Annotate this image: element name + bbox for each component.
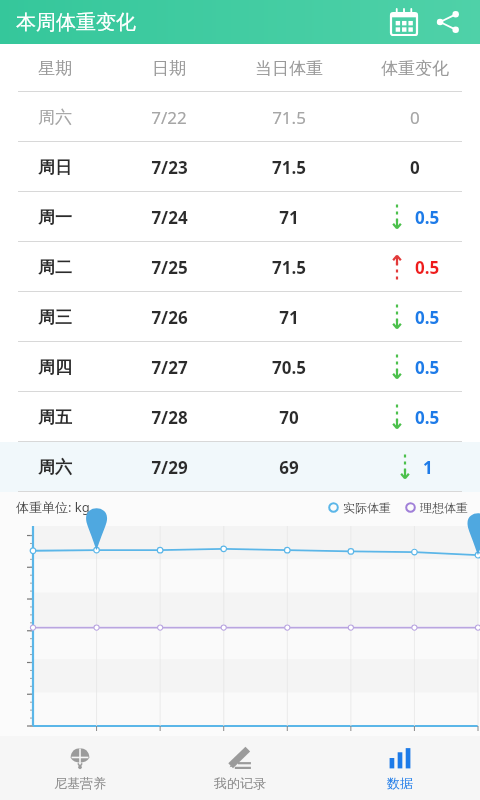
staticText: 7/26	[151, 306, 188, 329]
button[interactable]: 尼基营养	[0, 736, 160, 800]
staticText: 0.5	[415, 406, 440, 429]
staticText: 7/29	[151, 456, 188, 479]
button[interactable]: 周二	[0, 242, 480, 292]
staticText: 我的记录	[214, 775, 266, 791]
button[interactable]: 数据	[320, 736, 480, 800]
staticText: 实际体重	[343, 500, 391, 515]
staticText: 71.5	[272, 156, 306, 179]
staticText: 周日	[38, 157, 72, 178]
staticText: 7/24	[151, 206, 188, 229]
staticText: 69	[279, 456, 299, 479]
staticText: 71.5	[272, 106, 306, 129]
staticText: 本周体重变化	[16, 10, 136, 35]
staticText: 0.5	[415, 206, 440, 229]
staticText: 7/22	[151, 106, 187, 129]
button[interactable]: 我的记录	[160, 736, 320, 800]
staticText: 0.5	[415, 356, 440, 379]
staticText: 体重变化	[381, 58, 449, 79]
staticText: 周二	[38, 257, 72, 278]
staticText: 0	[410, 156, 420, 179]
staticText: 理想体重	[420, 500, 468, 515]
staticText: 70	[279, 406, 299, 429]
staticText: 71.5	[272, 256, 306, 279]
staticText: 当日体重	[255, 58, 323, 79]
staticText: 周六	[38, 107, 72, 128]
staticText: 7/27	[151, 356, 188, 379]
button[interactable]: 周日	[0, 142, 480, 192]
button[interactable]: 周一	[0, 192, 480, 242]
staticText: 7/25	[151, 256, 188, 279]
staticText: 70.5	[272, 356, 306, 379]
staticText: 尼基营养	[54, 775, 106, 791]
staticText: 体重单位: kg	[16, 498, 90, 516]
staticText: 周六	[38, 457, 72, 478]
staticText: 7/23	[151, 156, 188, 179]
button[interactable]: 周六	[0, 442, 480, 492]
staticText: 日期	[152, 58, 186, 79]
staticText: 71	[279, 206, 299, 229]
staticText: 周五	[38, 407, 72, 428]
button[interactable]: 周五	[0, 392, 480, 442]
staticText: 周三	[38, 307, 72, 328]
button[interactable]: 周四	[0, 342, 480, 392]
button[interactable]: Calendar	[382, 0, 426, 44]
staticText: 7/28	[151, 406, 188, 429]
staticText: 数据	[387, 775, 413, 791]
button[interactable]: 周三	[0, 292, 480, 342]
staticText: 周四	[38, 357, 72, 378]
staticText: 0.5	[415, 256, 440, 279]
button[interactable]: 周六	[0, 92, 480, 142]
staticText: 周一	[38, 207, 72, 228]
staticText: 71	[279, 306, 299, 329]
button[interactable]: Share	[426, 0, 470, 44]
staticText: 1	[423, 456, 433, 479]
staticText: 0	[410, 106, 420, 129]
staticText: 星期	[38, 58, 72, 79]
staticText: 0.5	[415, 306, 440, 329]
